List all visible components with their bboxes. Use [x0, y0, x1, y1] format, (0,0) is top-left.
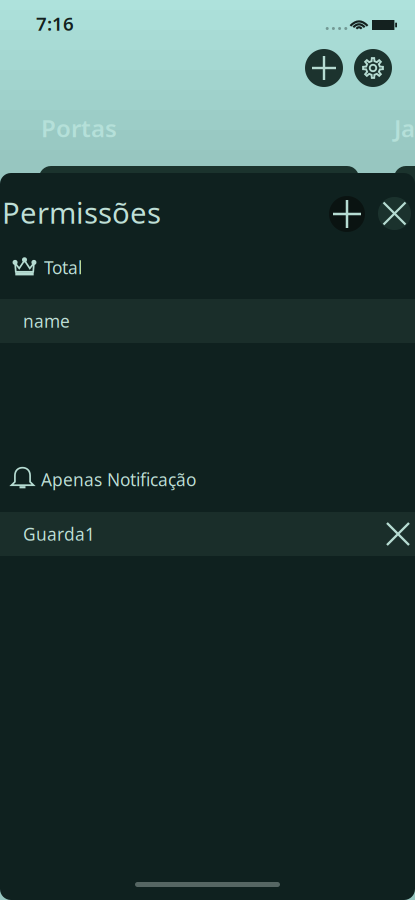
staticText: Permissões [2, 193, 161, 232]
staticText: Total [44, 256, 82, 279]
staticText: Ja [394, 112, 415, 144]
button[interactable]: name [0, 299, 415, 343]
button[interactable]: Remover Guarda1 [381, 517, 415, 551]
staticText: name [23, 309, 70, 332]
staticText: Portas [41, 112, 117, 144]
button[interactable]: Adicionar permissão [329, 196, 365, 232]
button[interactable]: Fechar [378, 197, 411, 230]
button[interactable]: Adicionar [305, 49, 343, 87]
staticText: Guarda1 [23, 522, 95, 545]
button[interactable]: Configurações [354, 49, 392, 87]
staticText: 7:16 [36, 11, 74, 36]
staticText: Apenas Notificação [41, 468, 196, 491]
